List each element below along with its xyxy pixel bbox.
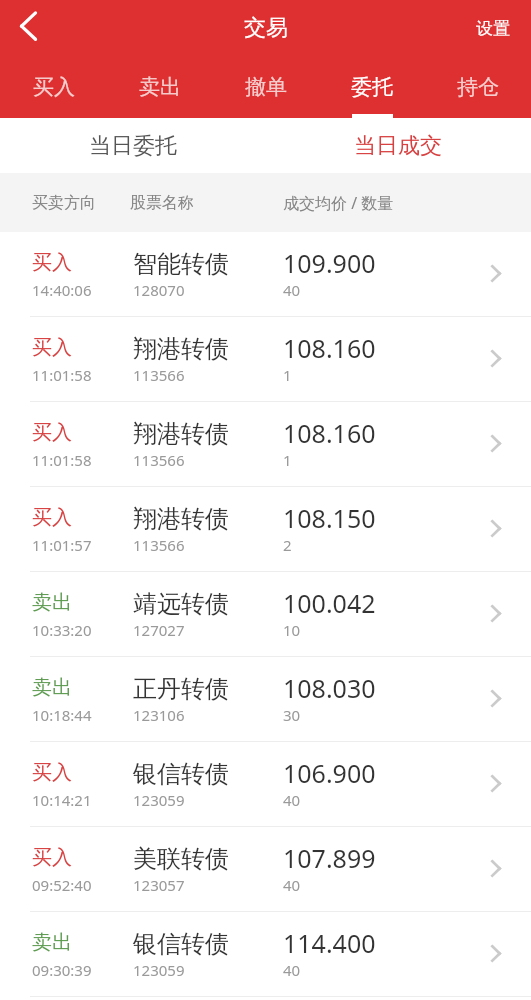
staticText: 123057 <box>133 875 185 895</box>
staticText: 40 <box>283 875 301 895</box>
staticText: 10:18:44 <box>32 705 92 725</box>
staticText: 09:30:39 <box>32 960 92 980</box>
button[interactable]: 卖出 <box>0 912 531 997</box>
button[interactable]: 卖出 <box>107 56 213 118</box>
staticText: 10:14:21 <box>32 790 92 810</box>
staticText: 当日委托 <box>89 132 177 160</box>
staticText: 1 <box>283 365 292 385</box>
button[interactable]: 买入 <box>0 487 531 572</box>
staticText: 买入 <box>33 74 75 100</box>
staticText: 委托 <box>351 74 393 100</box>
staticText: 40 <box>283 960 301 980</box>
button[interactable]: 设置 <box>468 10 518 47</box>
staticText: 正丹转债 <box>133 674 229 704</box>
button[interactable]: 买入 <box>0 827 531 912</box>
button[interactable]: 委托 <box>319 56 425 118</box>
button[interactable]: 卖出 <box>0 657 531 742</box>
staticText: 买入 <box>32 760 72 785</box>
staticText: 2 <box>283 535 292 555</box>
staticText: 卖出 <box>32 930 72 955</box>
button[interactable]: 买入 <box>0 402 531 487</box>
button[interactable]: 卖出 <box>0 572 531 657</box>
staticText: 交易 <box>244 14 288 42</box>
staticText: 买入 <box>32 250 72 275</box>
staticText: 10 <box>283 620 301 640</box>
staticText: 30 <box>283 705 301 725</box>
staticText: 107.899 <box>283 841 376 875</box>
button[interactable]: 持仓 <box>425 56 531 118</box>
staticText: 109.900 <box>283 246 376 280</box>
staticText: 113566 <box>133 365 185 385</box>
staticText: 11:01:58 <box>32 365 92 385</box>
staticText: 113566 <box>133 450 185 470</box>
button[interactable]: 买入 <box>0 742 531 827</box>
button[interactable]: Back <box>0 0 56 56</box>
staticText: 123059 <box>133 790 185 810</box>
staticText: 撤单 <box>245 74 287 100</box>
staticText: 40 <box>283 280 301 300</box>
button[interactable]: 买入 <box>0 56 107 118</box>
staticText: 设置 <box>476 18 510 39</box>
button[interactable]: 撤单 <box>213 56 319 118</box>
staticText: 股票名称 <box>130 193 194 213</box>
staticText: 114.400 <box>283 926 376 960</box>
staticText: 美联转债 <box>133 844 229 874</box>
staticText: 100.042 <box>283 586 376 620</box>
button[interactable]: 当日委托 <box>0 118 265 173</box>
staticText: 10:33:20 <box>32 620 92 640</box>
staticText: 卖出 <box>32 675 72 700</box>
staticText: 113566 <box>133 535 185 555</box>
staticText: 翔港转债 <box>133 504 229 534</box>
staticText: 40 <box>283 790 301 810</box>
staticText: 108.160 <box>283 331 376 365</box>
staticText: 09:52:40 <box>32 875 92 895</box>
staticText: 108.150 <box>283 501 376 535</box>
staticText: 128070 <box>133 280 185 300</box>
staticText: 靖远转债 <box>133 589 229 619</box>
staticText: 银信转债 <box>133 759 229 789</box>
staticText: 翔港转债 <box>133 334 229 364</box>
staticText: 买入 <box>32 335 72 360</box>
staticText: 成交均价 / 数量 <box>283 192 394 214</box>
staticText: 卖出 <box>139 74 181 100</box>
button[interactable]: 买入 <box>0 232 531 317</box>
button[interactable]: 当日成交 <box>265 118 531 173</box>
staticText: 106.900 <box>283 756 376 790</box>
staticText: 123106 <box>133 705 185 725</box>
staticText: 1 <box>283 450 292 470</box>
staticText: 108.160 <box>283 416 376 450</box>
staticText: 108.030 <box>283 671 376 705</box>
staticText: 当日成交 <box>354 132 442 160</box>
staticText: 11:01:58 <box>32 450 92 470</box>
staticText: 11:01:57 <box>32 535 92 555</box>
staticText: 持仓 <box>457 74 499 100</box>
staticText: 买入 <box>32 845 72 870</box>
staticText: 买入 <box>32 505 72 530</box>
staticText: 14:40:06 <box>32 280 92 300</box>
staticText: 127027 <box>133 620 185 640</box>
staticText: 买入 <box>32 420 72 445</box>
staticText: 卖出 <box>32 590 72 615</box>
staticText: 买卖方向 <box>32 193 96 213</box>
button[interactable]: 买入 <box>0 317 531 402</box>
staticText: 翔港转债 <box>133 419 229 449</box>
staticText: 123059 <box>133 960 185 980</box>
staticText: 银信转债 <box>133 929 229 959</box>
staticText: 智能转债 <box>133 249 229 279</box>
